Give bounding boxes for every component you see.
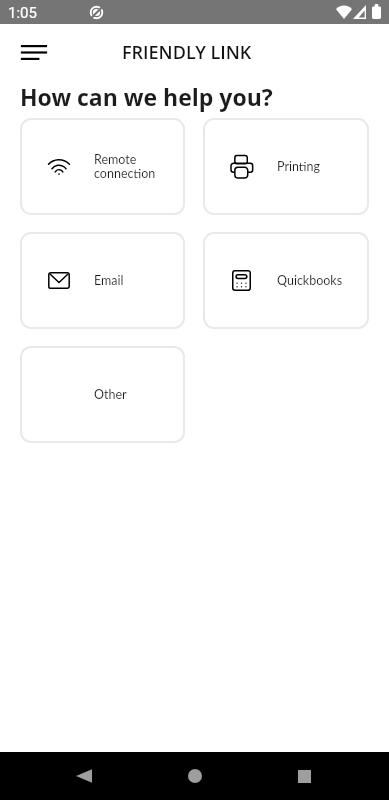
staticText: 1:05	[8, 4, 37, 22]
staticText: Printing	[277, 159, 320, 174]
staticText: Other	[94, 387, 127, 402]
button[interactable]: Printing	[205, 120, 367, 213]
button[interactable]: Recent apps	[280, 752, 328, 800]
staticText: Remote connection	[94, 152, 156, 181]
staticText: How can we help you?	[20, 81, 273, 112]
button[interactable]: Remote connection	[22, 120, 183, 213]
button[interactable]: Home	[171, 752, 219, 800]
button[interactable]: Open navigation menu	[16, 34, 52, 70]
staticText: Email	[94, 273, 124, 288]
button[interactable]: Back	[60, 752, 108, 800]
staticText: Quickbooks	[277, 273, 343, 288]
staticText: FRIENDLY LINK	[122, 40, 252, 65]
button[interactable]: Other	[22, 348, 183, 441]
button[interactable]: Email	[22, 234, 183, 327]
button[interactable]: Quickbooks	[205, 234, 367, 327]
